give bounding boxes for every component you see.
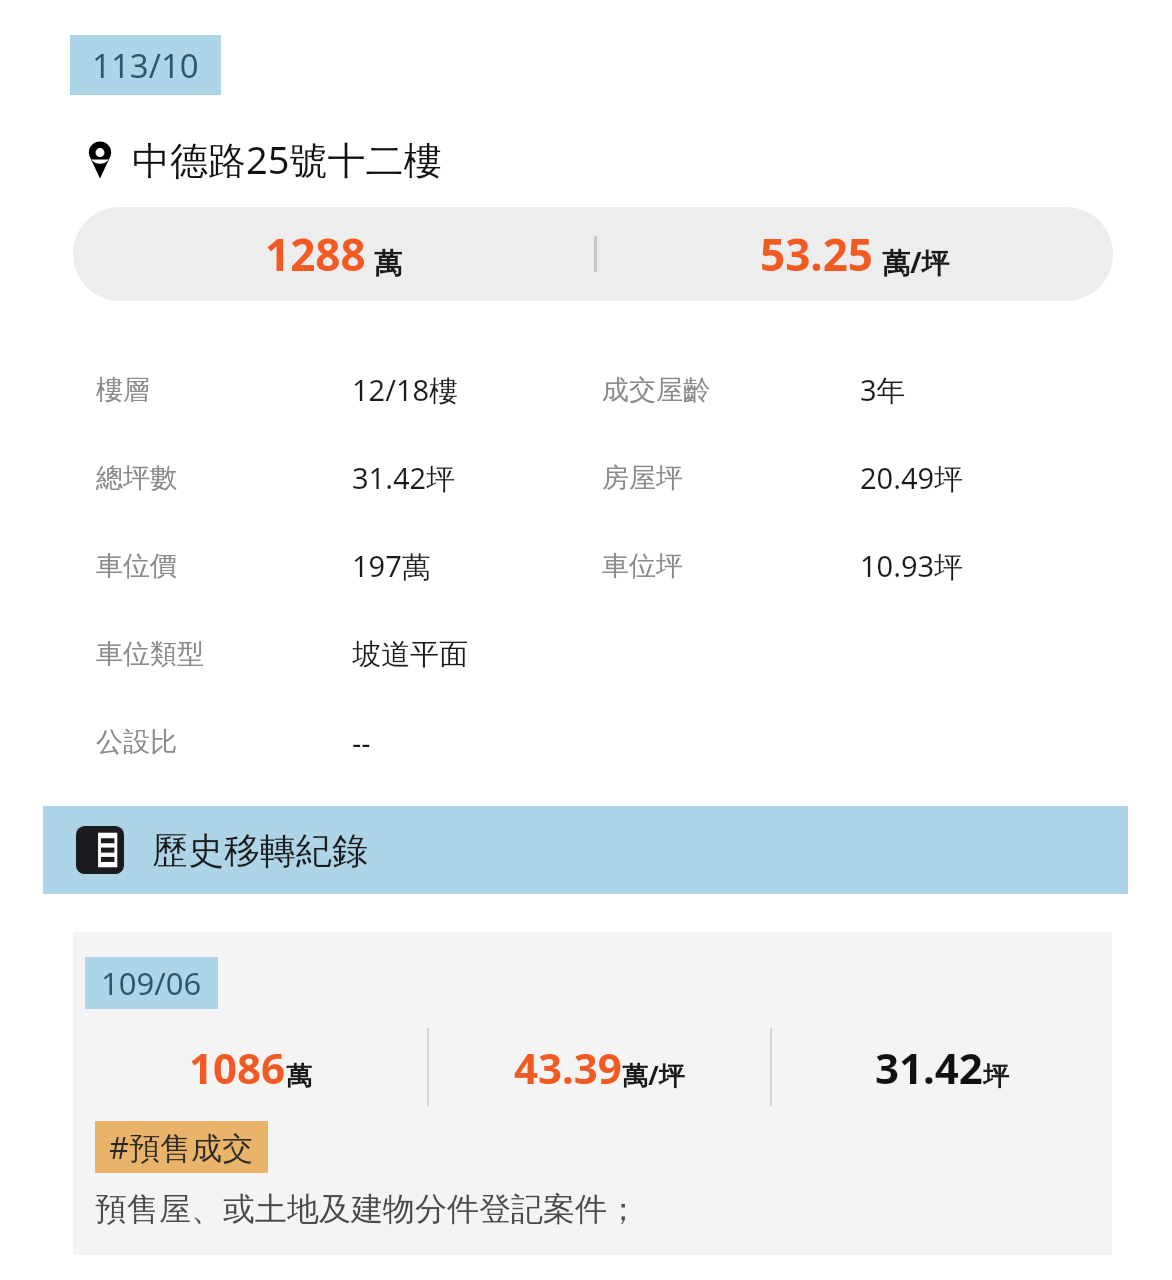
- other: 歷史移轉紀錄: [76, 826, 124, 874]
- staticText: 31.42: [875, 1039, 983, 1096]
- staticText: 公設比: [96, 725, 177, 759]
- staticText: 113/10: [92, 43, 199, 88]
- staticText: 中德路25號十二樓: [132, 133, 442, 185]
- staticText: 萬/坪: [622, 1057, 685, 1093]
- staticText: 房屋坪: [602, 461, 683, 495]
- staticText: 萬: [374, 246, 402, 281]
- staticText: 12/18樓: [352, 370, 459, 410]
- staticText: 總坪數: [96, 461, 177, 495]
- staticText: 53.25: [760, 224, 874, 284]
- staticText: 109/06: [101, 962, 202, 1004]
- staticText: 萬: [286, 1060, 312, 1093]
- button[interactable]: 1288: [73, 207, 1113, 301]
- staticText: 坡道平面: [352, 636, 468, 673]
- button[interactable]: Location: [0, 133, 1172, 185]
- button[interactable]: 109/06: [73, 932, 1112, 1255]
- staticText: 1288: [265, 224, 366, 284]
- staticText: 成交屋齡: [602, 373, 710, 407]
- staticText: 3年: [860, 370, 906, 410]
- staticText: 萬/坪: [882, 243, 950, 281]
- staticText: 樓層: [96, 373, 150, 407]
- staticText: 車位價: [96, 549, 177, 583]
- staticText: 車位坪: [602, 549, 683, 583]
- staticText: 坪: [983, 1060, 1009, 1093]
- staticText: 197萬: [352, 546, 431, 586]
- button[interactable]: 113/10: [70, 35, 221, 95]
- staticText: 車位類型: [96, 637, 204, 671]
- staticText: 預售屋、或土地及建物分件登記案件；: [95, 1189, 639, 1229]
- staticText: --: [352, 723, 371, 762]
- staticText: 20.49坪: [860, 458, 964, 498]
- staticText: 43.39: [514, 1039, 622, 1096]
- button[interactable]: #預售成交: [95, 1121, 268, 1173]
- staticText: 31.42坪: [352, 458, 456, 498]
- other: Location: [86, 139, 114, 179]
- staticText: 10.93坪: [860, 546, 964, 586]
- staticText: #預售成交: [109, 1126, 254, 1168]
- staticText: 歷史移轉紀錄: [152, 828, 368, 873]
- button[interactable]: 歷史移轉紀錄: [43, 806, 1128, 894]
- staticText: 1086: [189, 1039, 286, 1096]
